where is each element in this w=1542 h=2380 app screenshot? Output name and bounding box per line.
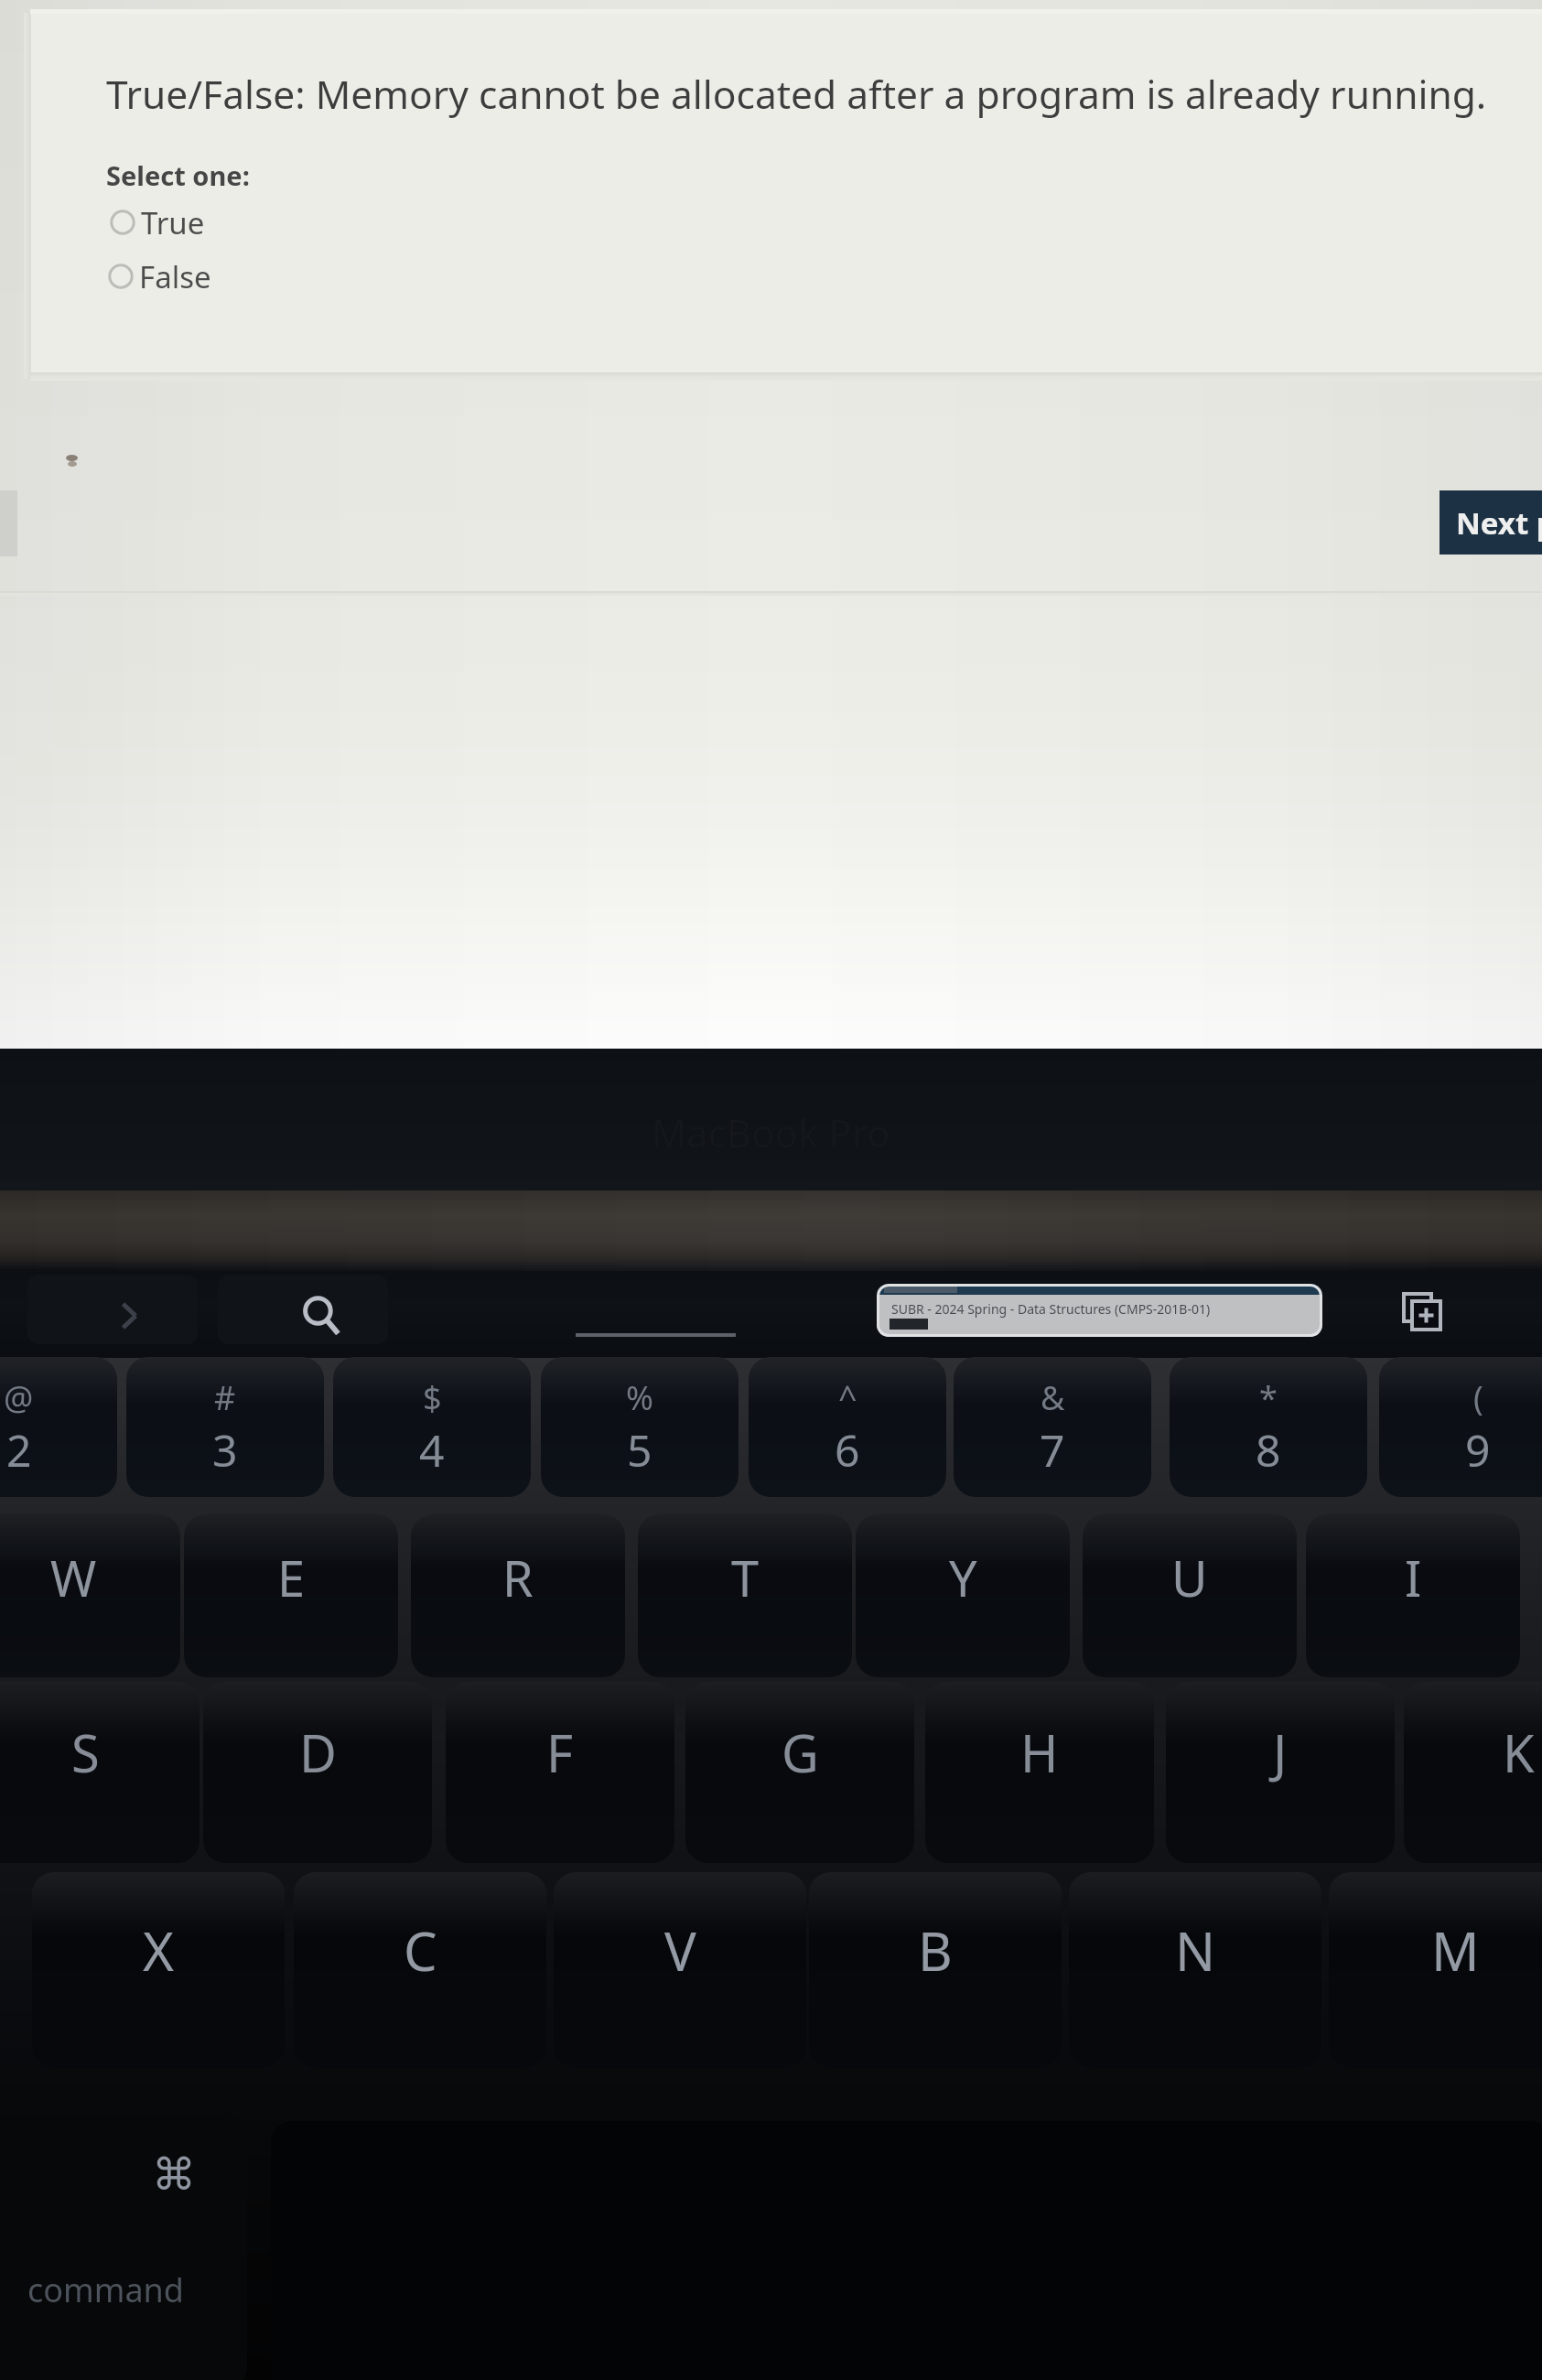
staticText: W bbox=[50, 1544, 97, 1611]
staticText: B bbox=[918, 1914, 953, 1987]
button[interactable]: SUBR - 2024 Spring - Data Structures (CM… bbox=[877, 1284, 1322, 1337]
staticText: 4 bbox=[419, 1420, 445, 1480]
button[interactable]: G bbox=[685, 1682, 914, 1863]
button[interactable]: False bbox=[108, 254, 211, 298]
staticText: K bbox=[1503, 1718, 1535, 1787]
button[interactable]: H bbox=[925, 1682, 1154, 1863]
button[interactable]: ⌘ bbox=[0, 2114, 247, 2380]
button[interactable]: S bbox=[0, 1682, 199, 1863]
staticText: SUBR - 2024 Spring - Data Structures (CM… bbox=[891, 1300, 1211, 1318]
staticText: D bbox=[299, 1718, 337, 1787]
staticText: 6 bbox=[835, 1420, 860, 1480]
button[interactable]: W bbox=[0, 1514, 180, 1677]
staticText: E bbox=[277, 1544, 306, 1611]
button[interactable]: I bbox=[1306, 1514, 1520, 1677]
button[interactable]: N bbox=[1069, 1872, 1321, 2068]
staticText: M bbox=[1431, 1914, 1480, 1987]
staticText: Y bbox=[949, 1544, 977, 1611]
staticText: True bbox=[141, 202, 205, 243]
staticText: 2 bbox=[6, 1420, 32, 1480]
staticText: U bbox=[1171, 1544, 1208, 1611]
staticText: Select one: bbox=[106, 157, 250, 193]
button[interactable]: C bbox=[294, 1872, 546, 2068]
staticText: V bbox=[664, 1914, 696, 1987]
button[interactable]: X bbox=[32, 1872, 285, 2068]
staticText: ( bbox=[1473, 1375, 1483, 1420]
button[interactable]: V bbox=[554, 1872, 806, 2068]
staticText: 9 bbox=[1465, 1420, 1491, 1480]
staticText: H bbox=[1020, 1718, 1059, 1787]
staticText: J bbox=[1273, 1718, 1288, 1787]
button[interactable]: B bbox=[809, 1872, 1062, 2068]
staticText: 5 bbox=[627, 1420, 652, 1480]
button[interactable]: ^ bbox=[749, 1357, 946, 1497]
button[interactable]: U bbox=[1083, 1514, 1297, 1677]
staticText: G bbox=[782, 1718, 819, 1787]
staticText: & bbox=[1041, 1375, 1065, 1420]
staticText: 7 bbox=[1040, 1420, 1065, 1480]
button[interactable]: E bbox=[184, 1514, 398, 1677]
staticText: @ bbox=[4, 1375, 34, 1420]
button[interactable]: J bbox=[1166, 1682, 1395, 1863]
button[interactable]: Search bbox=[294, 1287, 350, 1344]
staticText: T bbox=[731, 1544, 760, 1611]
button[interactable]: Next p bbox=[1440, 490, 1542, 555]
button[interactable]: Forward bbox=[102, 1289, 156, 1342]
staticText: # bbox=[214, 1375, 236, 1420]
staticText: % bbox=[626, 1375, 653, 1420]
staticText: N bbox=[1175, 1914, 1216, 1987]
button[interactable]: Y bbox=[856, 1514, 1070, 1677]
staticText: 3 bbox=[212, 1420, 238, 1480]
button[interactable]: D bbox=[203, 1682, 432, 1863]
staticText: True/False: Memory cannot be allocated a… bbox=[106, 68, 1487, 121]
button[interactable]: % bbox=[541, 1357, 739, 1497]
staticText: $ bbox=[423, 1375, 442, 1420]
staticText: C bbox=[404, 1914, 437, 1987]
button[interactable]: @ bbox=[0, 1357, 117, 1497]
button[interactable]: F bbox=[446, 1682, 674, 1863]
button[interactable]: $ bbox=[333, 1357, 531, 1497]
staticText: ^ bbox=[838, 1375, 857, 1420]
staticText: * bbox=[1259, 1375, 1278, 1420]
staticText: S bbox=[71, 1718, 100, 1787]
staticText: False bbox=[139, 256, 211, 297]
button[interactable]: K bbox=[1404, 1682, 1542, 1863]
button[interactable]: ( bbox=[1379, 1357, 1542, 1497]
button[interactable]: & bbox=[954, 1357, 1151, 1497]
staticText: I bbox=[1405, 1544, 1422, 1611]
staticText: F bbox=[546, 1718, 574, 1787]
staticText: ⌘ bbox=[152, 2148, 196, 2200]
button[interactable]: True bbox=[110, 200, 205, 244]
button[interactable]: New tab bbox=[1393, 1282, 1453, 1342]
staticText: X bbox=[143, 1914, 174, 1987]
button[interactable]: T bbox=[638, 1514, 852, 1677]
staticText: Next p bbox=[1456, 502, 1542, 544]
staticText: 8 bbox=[1256, 1420, 1281, 1480]
staticText: R bbox=[502, 1544, 534, 1611]
staticText: command bbox=[27, 2267, 184, 2312]
button[interactable]: # bbox=[126, 1357, 324, 1497]
button[interactable]: R bbox=[411, 1514, 625, 1677]
button[interactable]: M bbox=[1329, 1872, 1542, 2068]
button[interactable]: * bbox=[1170, 1357, 1367, 1497]
